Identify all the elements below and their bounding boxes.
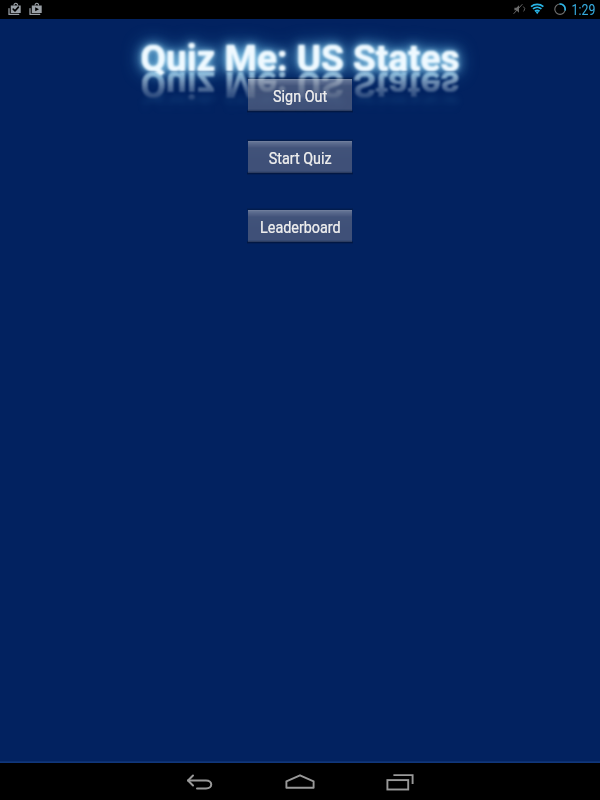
staticText: Quiz Me: US States <box>0 37 600 80</box>
staticText: Quiz Me: US States <box>0 63 600 106</box>
staticText: Quiz Me: US States <box>0 37 600 80</box>
staticText: Sign Out <box>273 86 328 106</box>
button[interactable]: Start Quiz <box>248 141 352 173</box>
button[interactable]: Back <box>170 763 230 800</box>
staticText: Quiz Me: US States <box>0 37 600 80</box>
button[interactable]: Sign Out <box>248 79 352 111</box>
staticText: Leaderboard <box>260 217 341 237</box>
staticText: Quiz Me: US States <box>0 37 600 80</box>
button[interactable]: Recents <box>370 763 430 800</box>
button[interactable]: Home <box>270 763 330 800</box>
staticText: Quiz Me: US States <box>0 89 600 132</box>
staticText: Start Quiz <box>269 148 332 168</box>
staticText: 1:29 <box>572 2 595 18</box>
button[interactable]: Leaderboard <box>248 210 352 242</box>
